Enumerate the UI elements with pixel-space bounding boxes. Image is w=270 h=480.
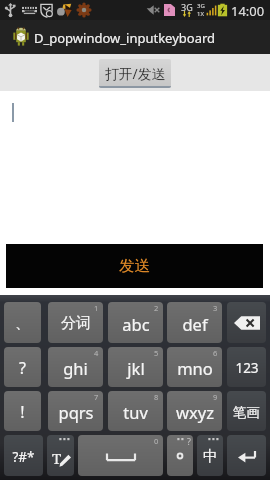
staticText: tuv bbox=[123, 401, 148, 423]
button[interactable]: ! bbox=[4, 391, 41, 431]
staticText: 1X bbox=[197, 10, 204, 18]
staticText: 0 bbox=[154, 436, 159, 446]
staticText: 3G bbox=[197, 2, 205, 10]
staticText: 4 bbox=[94, 348, 99, 358]
button[interactable]: 123 bbox=[227, 347, 266, 387]
button[interactable]: 笔画 bbox=[227, 391, 266, 431]
button[interactable]: T bbox=[47, 435, 74, 476]
staticText: 14:00 bbox=[231, 2, 265, 20]
staticText: 5 bbox=[154, 348, 159, 358]
staticText: pqrs bbox=[58, 401, 94, 423]
staticText: ? bbox=[187, 435, 191, 447]
button[interactable]: ? bbox=[167, 435, 193, 476]
button[interactable]: 中 bbox=[197, 435, 223, 476]
staticText: 、 bbox=[15, 314, 30, 333]
staticText: 2 bbox=[154, 303, 159, 313]
button[interactable]: pqrs bbox=[48, 391, 103, 431]
staticText: 分词 bbox=[61, 314, 91, 333]
button[interactable]: ? bbox=[4, 347, 41, 387]
staticText: 笔画 bbox=[233, 404, 260, 421]
staticText: 发送 bbox=[119, 256, 150, 276]
staticText: mno bbox=[177, 357, 213, 379]
staticText: 3G bbox=[181, 1, 193, 13]
staticText: abc bbox=[122, 313, 150, 335]
button[interactable]: jkl bbox=[108, 347, 163, 387]
button[interactable] bbox=[227, 302, 266, 343]
staticText: 123 bbox=[235, 359, 259, 377]
staticText: 7 bbox=[94, 392, 99, 402]
staticText: 8 bbox=[154, 392, 159, 402]
staticText: ? bbox=[19, 357, 26, 379]
staticText: D_popwindow_inputkeyboard bbox=[34, 29, 216, 47]
staticText: 6 bbox=[213, 348, 218, 358]
staticText: ghi bbox=[63, 357, 88, 379]
button[interactable]: 0 bbox=[78, 435, 163, 476]
staticText: 中 bbox=[203, 447, 218, 466]
button[interactable]: tuv bbox=[108, 391, 163, 431]
staticText: 3 bbox=[213, 303, 218, 313]
button[interactable]: abc bbox=[108, 302, 163, 343]
button[interactable]: wxyz bbox=[167, 391, 222, 431]
staticText: jkl bbox=[127, 357, 145, 379]
staticText: T bbox=[52, 448, 62, 466]
button[interactable]: 发送 bbox=[6, 244, 263, 288]
button[interactable]: 打开/发送 bbox=[99, 59, 171, 88]
staticText: ! bbox=[20, 401, 25, 423]
staticText: 打开/发送 bbox=[105, 64, 166, 83]
staticText: ?#* bbox=[12, 448, 35, 466]
button[interactable]: 分词 bbox=[48, 302, 103, 343]
button[interactable]: mno bbox=[167, 347, 222, 387]
button[interactable]: def bbox=[167, 302, 222, 343]
staticText: def bbox=[182, 313, 208, 335]
staticText: wxyz bbox=[176, 401, 214, 423]
button[interactable] bbox=[227, 435, 266, 476]
button[interactable]: ghi bbox=[48, 347, 103, 387]
staticText: 9 bbox=[213, 392, 218, 402]
button[interactable]: 、 bbox=[4, 302, 41, 343]
button[interactable]: ?#* bbox=[4, 435, 43, 476]
staticText: 1 bbox=[94, 303, 99, 313]
